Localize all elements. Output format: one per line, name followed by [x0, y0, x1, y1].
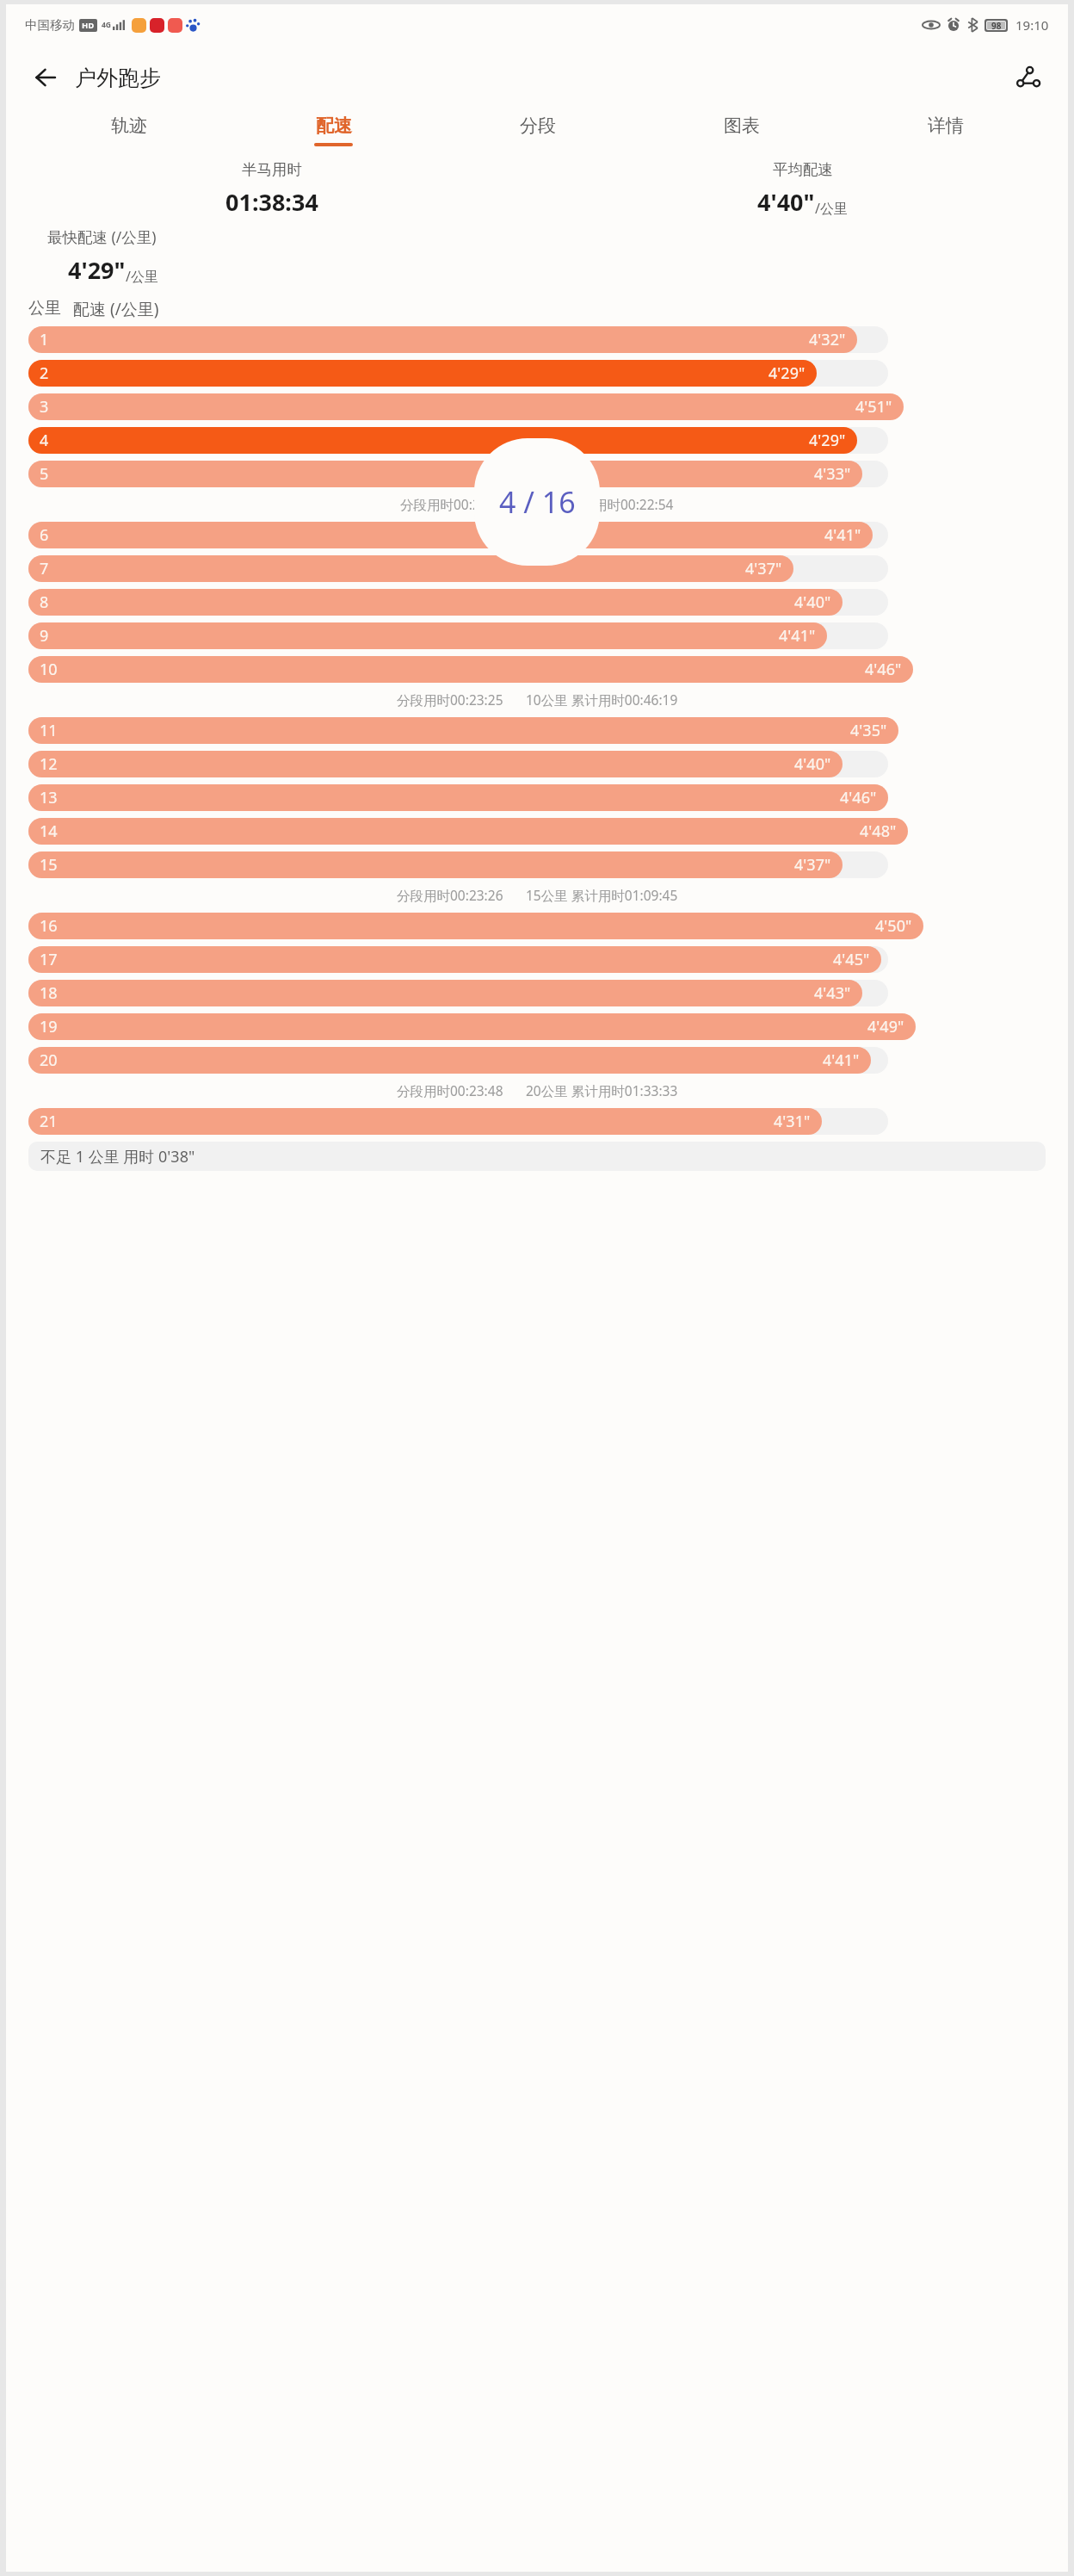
staticText: 15: [40, 854, 58, 876]
staticText: 4'37": [794, 854, 831, 876]
staticText: 4'41": [823, 1050, 860, 1071]
button[interactable]: 10: [28, 656, 1046, 683]
staticText: 4'37": [745, 558, 782, 579]
staticText: 半马用时: [242, 160, 302, 179]
staticText: 2: [40, 362, 49, 384]
staticText: 4'46": [865, 659, 902, 680]
staticText: 5: [40, 463, 49, 485]
staticText: 98: [991, 20, 1002, 32]
staticText: 7: [40, 558, 49, 579]
button[interactable]: 6: [28, 522, 1046, 548]
staticText: 配速 (/公里): [73, 298, 159, 320]
staticText: 20公里 累计用时01:33:33: [526, 1081, 678, 1099]
button[interactable]: 20: [28, 1047, 1046, 1074]
staticText: 户外跑步: [75, 65, 161, 91]
button[interactable]: 15: [28, 851, 1046, 878]
button[interactable]: 11: [28, 717, 1046, 744]
button[interactable]: 12: [28, 751, 1046, 777]
button[interactable]: 21: [28, 1108, 1046, 1135]
staticText: 1: [40, 329, 49, 350]
staticText: 19:10: [1015, 16, 1049, 34]
staticText: 20: [40, 1050, 58, 1071]
staticText: 10公里 累计用时00:46:19: [526, 690, 678, 709]
button[interactable]: 16: [28, 913, 1046, 939]
staticText: 分段: [520, 115, 556, 137]
staticText: 9: [40, 625, 49, 647]
staticText: 4'43": [814, 982, 851, 1004]
button[interactable]: 18: [28, 980, 1046, 1006]
staticText: 最快配速 (/公里): [47, 226, 157, 247]
staticText: 轨迹: [111, 115, 147, 137]
staticText: 19: [40, 1016, 58, 1037]
staticText: 4'45": [833, 949, 870, 970]
button[interactable]: Share: [1006, 55, 1051, 100]
button[interactable]: 图表: [639, 115, 843, 143]
button[interactable]: 5: [28, 461, 1046, 487]
staticText: 4: [40, 430, 49, 451]
button[interactable]: 13: [28, 784, 1046, 811]
staticText: 4'46": [840, 787, 877, 808]
button[interactable]: 2: [28, 360, 1046, 387]
button[interactable]: 4: [28, 427, 1046, 454]
staticText: 4'40": [757, 186, 815, 218]
staticText: 11: [40, 720, 58, 741]
staticText: 4'48": [860, 820, 897, 842]
button[interactable]: 详情: [843, 115, 1047, 143]
staticText: 4'41": [779, 625, 816, 647]
button[interactable]: 19: [28, 1013, 1046, 1040]
button[interactable]: 1: [28, 326, 1046, 353]
staticText: 4'49": [867, 1016, 904, 1037]
staticText: 分段用时00:23:25: [397, 690, 503, 709]
staticText: 18: [40, 982, 58, 1004]
button[interactable]: 14: [28, 818, 1046, 845]
staticText: 16: [40, 915, 58, 937]
staticText: 5公里 累计用时00:22:54: [529, 495, 674, 513]
staticText: 公里: [28, 298, 61, 319]
button[interactable]: 3: [28, 393, 1046, 420]
staticText: 4'41": [824, 524, 861, 546]
staticText: /公里: [126, 267, 158, 286]
staticText: 4'40": [794, 591, 831, 613]
staticText: 6: [40, 524, 49, 546]
staticText: 4'29": [68, 254, 126, 286]
button[interactable]: 9: [28, 622, 1046, 649]
staticText: 分段用时00:23:26: [397, 886, 503, 904]
staticText: 中国移动: [25, 17, 75, 33]
staticText: 分段用时00:23:48: [397, 1081, 503, 1099]
staticText: 15公里 累计用时01:09:45: [526, 886, 678, 904]
staticText: 4'40": [794, 753, 831, 775]
staticText: 4'50": [875, 915, 912, 937]
button[interactable]: 轨迹: [27, 115, 231, 143]
button[interactable]: 8: [28, 589, 1046, 616]
button[interactable]: 7: [28, 555, 1046, 582]
button[interactable]: 分段: [435, 115, 639, 143]
staticText: 4G: [102, 20, 112, 30]
staticText: 不足 1 公里 用时 0'38": [40, 1146, 195, 1167]
staticText: 4'35": [850, 720, 887, 741]
staticText: 8: [40, 591, 49, 613]
staticText: 详情: [928, 115, 964, 137]
staticText: 12: [40, 753, 58, 775]
staticText: 10: [40, 659, 58, 680]
staticText: HD: [82, 20, 95, 31]
staticText: 分段用时00:22:54: [400, 495, 507, 513]
staticText: 01:38:34: [225, 186, 318, 218]
staticText: 4'51": [855, 396, 892, 418]
staticText: 4 / 16: [499, 482, 576, 522]
staticText: 21: [40, 1111, 58, 1132]
staticText: 4'32": [809, 329, 846, 350]
staticText: 配速: [316, 115, 352, 137]
staticText: 图表: [724, 115, 760, 137]
staticText: 4'29": [809, 430, 846, 451]
staticText: 4'33": [814, 463, 851, 485]
staticText: 13: [40, 787, 58, 808]
button[interactable]: 配速: [231, 115, 435, 146]
button[interactable]: 17: [28, 946, 1046, 973]
staticText: 平均配速: [773, 160, 833, 179]
staticText: 4'29": [768, 362, 805, 384]
staticText: 3: [40, 396, 49, 418]
staticText: /公里: [815, 199, 848, 218]
button[interactable]: Back: [23, 55, 68, 100]
staticText: 4'31": [774, 1111, 811, 1132]
staticText: 17: [40, 949, 58, 970]
